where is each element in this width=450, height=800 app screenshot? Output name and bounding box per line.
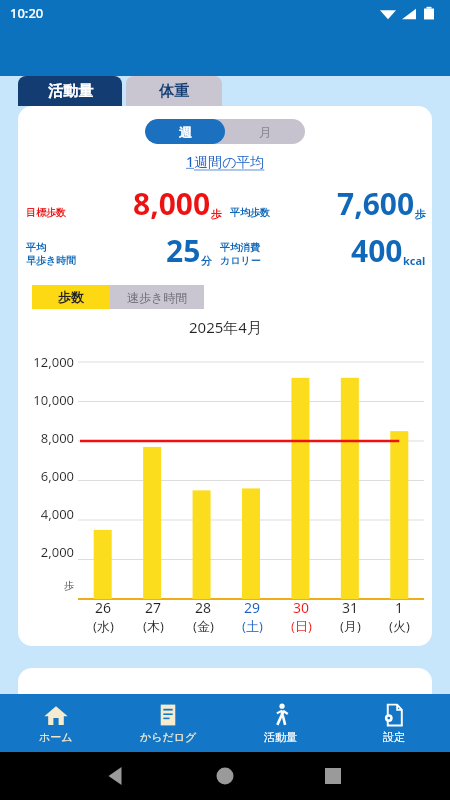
- staticText: 27: [145, 598, 162, 617]
- staticText: 400: [351, 230, 403, 271]
- button[interactable]: 速歩き時間: [110, 285, 204, 309]
- button[interactable]: 週: [145, 119, 225, 144]
- staticText: 歩: [415, 207, 426, 221]
- staticText: 31: [342, 598, 359, 617]
- staticText: 平均: [26, 241, 46, 254]
- button[interactable]: からだログ: [112, 694, 224, 752]
- staticText: ホーム: [39, 730, 73, 744]
- button[interactable]: 歩数: [32, 285, 110, 309]
- button[interactable]: ホーム: [0, 694, 112, 752]
- staticText: kcal: [403, 253, 426, 268]
- staticText: 活動量: [48, 82, 93, 101]
- button[interactable]: 活動量: [224, 694, 337, 752]
- staticText: 28: [195, 598, 212, 617]
- staticText: (土): [242, 617, 263, 635]
- staticText: (日): [291, 617, 312, 635]
- staticText: 10,000: [33, 391, 74, 409]
- staticText: 12,000: [33, 353, 74, 371]
- staticText: (木): [143, 617, 164, 635]
- staticText: (金): [193, 617, 214, 635]
- staticText: 目標歩数: [26, 206, 66, 219]
- staticText: 8,000: [40, 429, 74, 447]
- staticText: 10:20: [10, 4, 44, 22]
- staticText: (月): [340, 617, 361, 635]
- button[interactable]: 体重: [126, 76, 222, 106]
- staticText: 分: [201, 254, 212, 268]
- staticText: 1: [395, 598, 404, 617]
- staticText: 速歩き時間: [127, 290, 188, 305]
- staticText: 月: [259, 124, 272, 140]
- staticText: カロリー: [220, 254, 261, 267]
- staticText: 8,000: [133, 183, 211, 224]
- staticText: 25: [166, 230, 201, 271]
- staticText: 平均歩数: [230, 206, 270, 219]
- staticText: (火): [389, 617, 410, 635]
- button[interactable]: 活動量: [18, 76, 122, 106]
- staticText: 2,000: [40, 543, 74, 561]
- button[interactable]: 設定: [337, 694, 450, 752]
- staticText: 1週間の平均: [186, 152, 265, 171]
- staticText: 6,000: [40, 467, 74, 485]
- button[interactable]: 月: [225, 119, 305, 144]
- staticText: 歩: [64, 579, 74, 592]
- staticText: からだログ: [140, 730, 197, 744]
- staticText: 4,000: [40, 505, 74, 523]
- staticText: (水): [93, 617, 114, 635]
- staticText: 週: [179, 124, 192, 140]
- staticText: 歩: [211, 207, 222, 221]
- staticText: 歩数: [58, 289, 84, 305]
- staticText: 29: [244, 598, 261, 617]
- staticText: 早歩き時間: [26, 254, 77, 267]
- staticText: 26: [95, 598, 112, 617]
- staticText: 平均消費: [220, 241, 260, 254]
- staticText: 設定: [383, 730, 405, 744]
- staticText: 2025年4月: [189, 317, 262, 337]
- staticText: 7,600: [337, 183, 415, 224]
- staticText: 体重: [159, 82, 189, 101]
- staticText: 活動量: [264, 730, 297, 744]
- button[interactable]: 1週間の平均: [186, 152, 265, 171]
- staticText: 30: [293, 598, 310, 617]
